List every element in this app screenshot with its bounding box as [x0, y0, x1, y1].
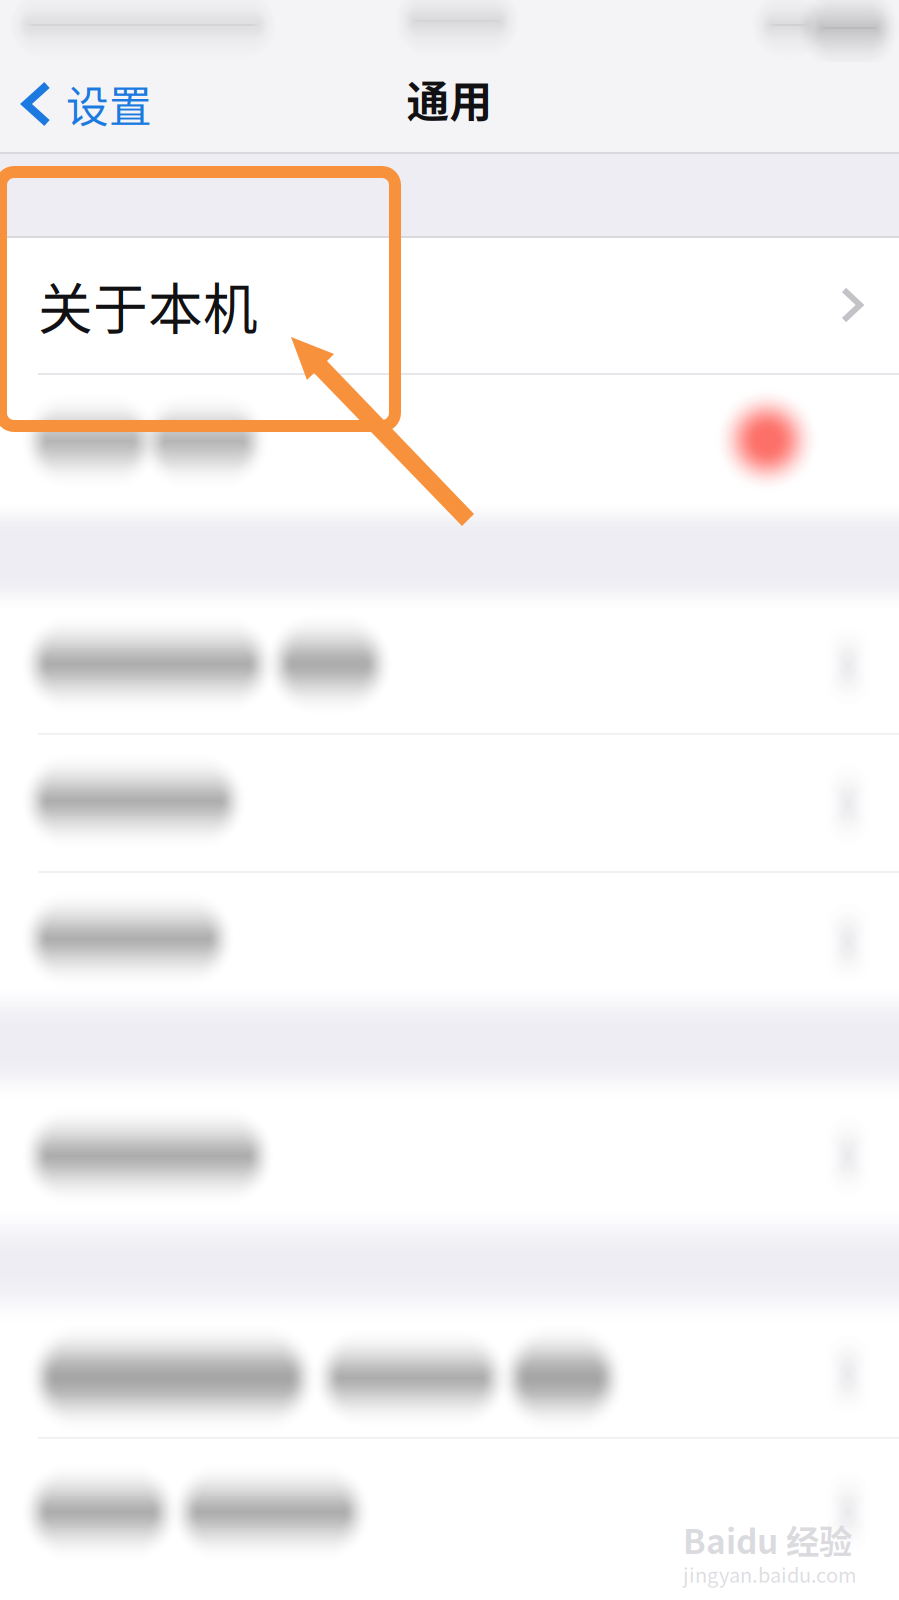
- staticText: Baidu 经验: [683, 1515, 852, 1564]
- button[interactable]: iCloud storage: [0, 0, 899, 1600]
- staticText: jingyan.baidu.com: [683, 1560, 857, 1589]
- button[interactable]: Settings row: [0, 0, 899, 1600]
- button[interactable]: CarPlay: [0, 0, 899, 1600]
- button[interactable]: Accessibility: [0, 0, 899, 1600]
- button[interactable]: 设置: [0, 58, 170, 149]
- staticText: 设置: [66, 73, 152, 135]
- staticText: 关于本机: [38, 265, 258, 345]
- button[interactable]: Spotlight search: [0, 0, 899, 1600]
- button[interactable]: 关于本机: [0, 237, 899, 373]
- button[interactable]: Handoff: [0, 0, 899, 1600]
- button[interactable]: Settings row: [0, 0, 899, 1600]
- staticText: 通用: [406, 68, 492, 130]
